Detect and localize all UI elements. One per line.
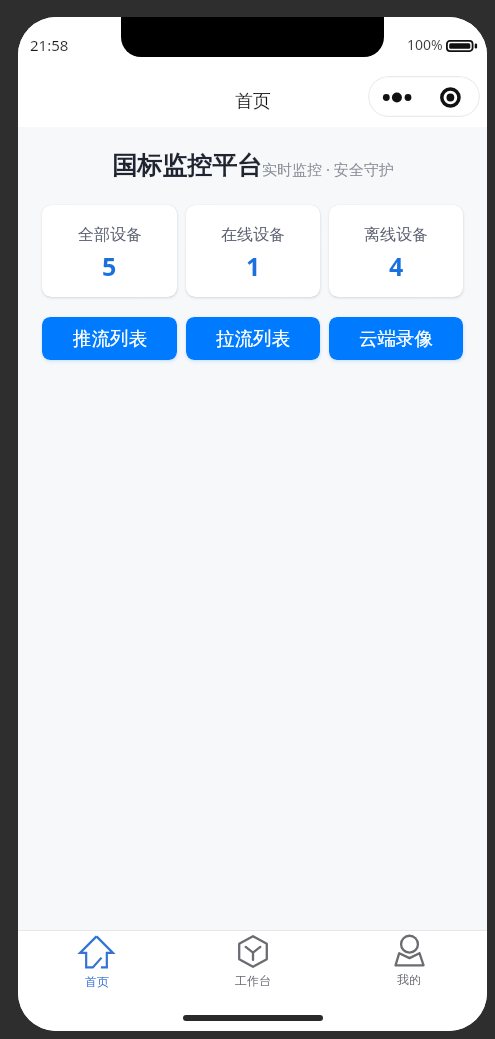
button[interactable]: 首页 — [18, 935, 175, 991]
staticText: 离线设备 — [364, 225, 428, 245]
button[interactable]: 在线设备 — [186, 205, 320, 297]
button[interactable]: 工作台 — [175, 935, 331, 991]
button[interactable]: 拉流列表 — [186, 317, 320, 360]
staticText: 云端录像 — [359, 327, 433, 350]
staticText: 国标监控平台 — [112, 150, 262, 181]
button[interactable]: 我的 — [331, 935, 487, 991]
staticText: 推流列表 — [73, 327, 147, 350]
staticText: 21:58 — [30, 35, 69, 55]
staticText: 实时监控 · 安全守护 — [262, 159, 394, 179]
button[interactable]: 全部设备 — [42, 205, 177, 297]
button[interactable]: 更多 — [368, 76, 480, 117]
staticText: 在线设备 — [221, 225, 285, 245]
staticText: 拉流列表 — [216, 327, 290, 350]
button[interactable]: 云端录像 — [329, 317, 463, 360]
staticText: 100% — [407, 35, 443, 54]
staticText: 5 — [102, 249, 117, 283]
button[interactable]: 推流列表 — [42, 317, 177, 360]
staticText: 4 — [389, 249, 404, 283]
staticText: 我的 — [397, 972, 421, 987]
staticText: 全部设备 — [78, 225, 142, 245]
button[interactable]: 离线设备 — [329, 205, 463, 297]
staticText: 1 — [246, 249, 261, 283]
staticText: 首页 — [235, 90, 271, 113]
staticText: 首页 — [85, 974, 109, 989]
staticText: 工作台 — [235, 973, 271, 988]
